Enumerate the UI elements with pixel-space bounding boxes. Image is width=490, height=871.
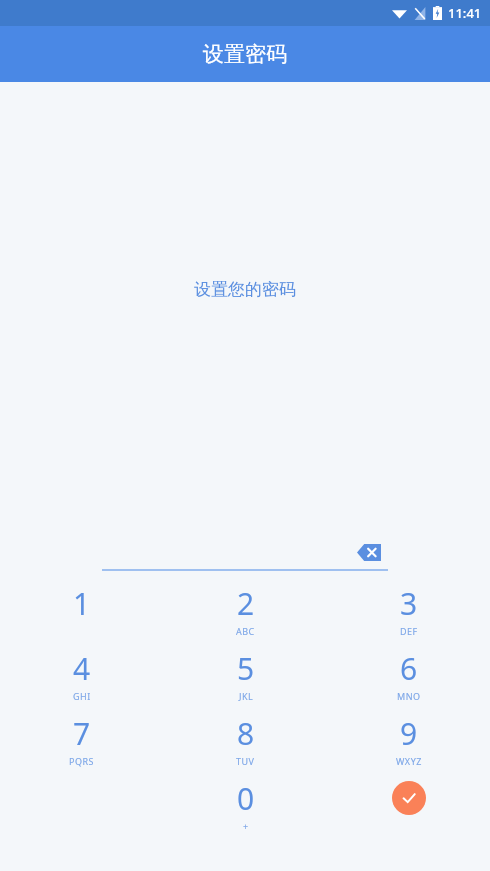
staticText: 9	[400, 713, 418, 754]
staticText: TUV	[236, 755, 255, 767]
staticText: PQRS	[69, 755, 95, 767]
button[interactable]: 5	[164, 642, 327, 707]
button[interactable]: 1	[0, 577, 164, 642]
staticText: 7	[73, 713, 91, 754]
button[interactable]: 3	[327, 577, 490, 642]
staticText: DEF	[400, 625, 418, 637]
button[interactable]: 0	[164, 772, 327, 837]
button[interactable]: Confirm	[392, 781, 426, 815]
button[interactable]: 9	[327, 707, 490, 772]
staticText: 4	[73, 648, 91, 689]
staticText: 2	[237, 583, 255, 624]
staticText: MNO	[397, 690, 421, 702]
staticText: +	[243, 820, 249, 832]
staticText: 11:41	[448, 4, 482, 22]
staticText: 设置您的密码	[0, 279, 490, 300]
staticText: 0	[237, 778, 255, 819]
staticText: 设置密码	[203, 41, 287, 67]
button[interactable]: 4	[0, 642, 164, 707]
button[interactable]: 2	[164, 577, 327, 642]
staticText: 3	[400, 583, 418, 624]
staticText: GHI	[73, 690, 91, 702]
button[interactable]: 6	[327, 642, 490, 707]
button[interactable]: 7	[0, 707, 164, 772]
staticText: 6	[400, 648, 418, 689]
staticText: 5	[237, 648, 255, 689]
button[interactable]: 8	[164, 707, 327, 772]
staticText: 1	[73, 583, 91, 624]
staticText: JKL	[239, 690, 254, 702]
staticText: WXYZ	[396, 755, 422, 767]
button[interactable]: Backspace	[350, 537, 388, 567]
staticText: ABC	[236, 625, 255, 637]
staticText: 8	[237, 713, 255, 754]
